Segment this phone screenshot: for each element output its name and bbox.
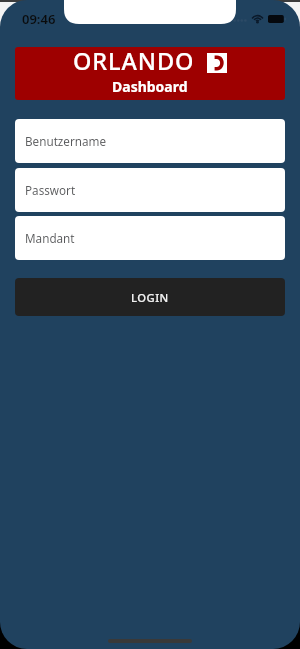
button[interactable]: LOGIN [15,278,285,316]
staticText: 09:46 [22,10,56,28]
button[interactable]: Mandant [15,216,285,260]
other: Battery [268,15,286,23]
other: Wi-Fi [252,14,263,23]
button[interactable]: Passwort [15,168,285,212]
staticText: Mandant [25,230,75,246]
button[interactable]: ORLANDO [15,47,285,100]
staticText: Dashboard [112,77,188,96]
staticText: Benutzername [25,133,107,149]
staticText: Passwort [25,182,76,198]
button[interactable]: Benutzername [15,119,285,163]
other: Mobile signal [233,14,246,23]
staticText: LOGIN [131,290,169,305]
staticText: ORLANDO [73,47,195,77]
